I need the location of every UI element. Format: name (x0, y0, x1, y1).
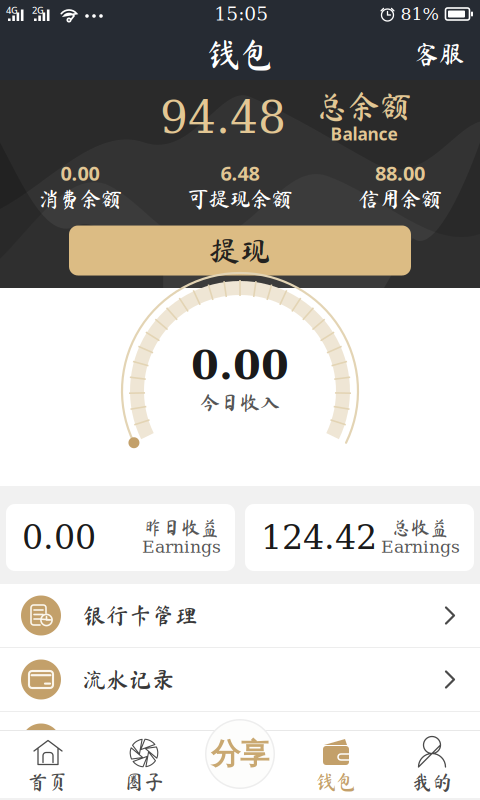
staticText: 信用余额 (358, 188, 442, 209)
staticText: 15:05 (214, 3, 268, 25)
button[interactable]: 首页 (0, 730, 96, 798)
staticText: 流水记录 (83, 668, 175, 691)
staticText: 6.48 (220, 160, 259, 186)
button[interactable]: 我的 (384, 730, 480, 798)
staticText: 总余额 (316, 90, 412, 122)
staticText: 0.00 (60, 160, 99, 186)
button[interactable]: 客服 (398, 31, 480, 77)
staticText: 提现 (209, 235, 271, 266)
staticText: 我的 (412, 772, 452, 792)
staticText: Earnings (381, 537, 460, 557)
button[interactable]: 提现 (69, 225, 411, 275)
staticText: 分享 (211, 735, 269, 772)
staticText: 客服 (414, 41, 464, 67)
button[interactable]: 0.00 (6, 504, 235, 571)
staticText: 银行卡管理 (83, 604, 198, 627)
staticText: 昨日收益 (143, 518, 219, 537)
staticText: 今日收入 (200, 392, 280, 412)
staticText: 81% (400, 4, 438, 24)
staticText: 总收益 (392, 518, 449, 537)
staticText: 124.42 (261, 518, 377, 557)
staticText: 消费余额 (38, 188, 122, 209)
button[interactable]: 分享 (204, 718, 276, 790)
button[interactable]: 钱包 (288, 730, 384, 798)
staticText: 88.00 (375, 160, 425, 186)
staticText: 0.00 (191, 341, 289, 388)
staticText: Balance (330, 122, 397, 146)
staticText: 0.00 (22, 518, 96, 557)
staticText: Earnings (142, 537, 221, 557)
staticText: 4G (6, 4, 18, 16)
button[interactable]: 流水记录 (0, 648, 480, 711)
staticText: 94.48 (160, 92, 286, 143)
button[interactable]: 124.42 (245, 504, 474, 571)
button[interactable]: 圈子 (96, 730, 192, 798)
staticText: 钱包 (316, 772, 356, 792)
button[interactable]: 银行卡管理 (0, 584, 480, 647)
staticText: 2G (32, 4, 44, 16)
staticText: 钱包 (207, 37, 273, 71)
staticText: 可提现余额 (187, 188, 292, 209)
staticText: 首页 (28, 772, 68, 792)
staticText: 圈子 (124, 772, 164, 792)
